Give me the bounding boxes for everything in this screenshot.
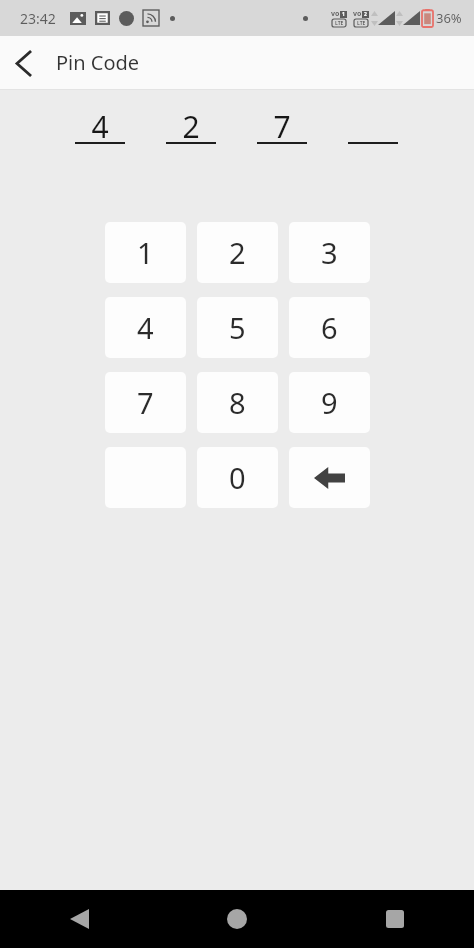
- button[interactable]: Home: [214, 896, 260, 942]
- button[interactable]: 6: [289, 297, 370, 358]
- staticText: vo: [331, 9, 340, 19]
- staticText: 23:42: [20, 9, 56, 28]
- staticText: 1: [342, 11, 345, 18]
- staticText: 0: [229, 458, 246, 497]
- button[interactable]: 7: [105, 372, 186, 433]
- button[interactable]: 0: [197, 447, 278, 508]
- staticText: vo: [353, 9, 362, 19]
- staticText: 2: [364, 11, 367, 18]
- button[interactable]: Recent apps: [372, 896, 418, 942]
- staticText: 2: [182, 106, 200, 142]
- button[interactable]: 1: [105, 222, 186, 283]
- button[interactable]: Back: [2, 42, 44, 84]
- staticText: LTE: [357, 20, 366, 27]
- staticText: 7: [273, 106, 291, 142]
- button[interactable]: 4: [105, 297, 186, 358]
- staticText: 9: [321, 383, 338, 422]
- staticText: 4: [137, 308, 154, 347]
- staticText: 7: [137, 383, 154, 422]
- staticText: Pin Code: [56, 49, 140, 76]
- button[interactable]: 8: [197, 372, 278, 433]
- button[interactable]: 9: [289, 372, 370, 433]
- button[interactable]: Back: [56, 896, 102, 942]
- staticText: LTE: [335, 20, 344, 27]
- staticText: 36%: [436, 9, 462, 27]
- staticText: 6: [321, 308, 338, 347]
- button[interactable]: 3: [289, 222, 370, 283]
- button[interactable]: Backspace: [289, 447, 370, 508]
- staticText: 8: [229, 383, 246, 422]
- staticText: 2: [229, 233, 246, 272]
- button[interactable]: 5: [197, 297, 278, 358]
- staticText: 5: [229, 308, 246, 347]
- staticText: 3: [321, 233, 338, 272]
- button[interactable]: 2: [197, 222, 278, 283]
- staticText: 4: [91, 106, 109, 142]
- staticText: 1: [137, 233, 154, 272]
